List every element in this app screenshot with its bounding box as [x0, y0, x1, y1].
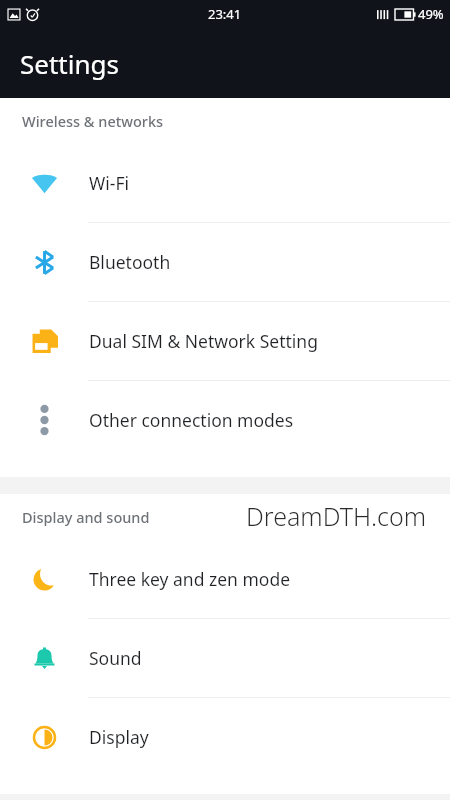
- staticText: Sound: [89, 646, 142, 670]
- staticText: 49%: [418, 5, 444, 23]
- button[interactable]: Wi-Fi: [0, 144, 450, 222]
- staticText: Wi-Fi: [89, 171, 130, 195]
- button[interactable]: Other connection modes: [0, 381, 450, 459]
- staticText: 23:41: [208, 5, 242, 23]
- button[interactable]: Sound: [0, 619, 450, 697]
- staticText: Other connection modes: [89, 408, 294, 432]
- button[interactable]: Dual SIM & Network Setting: [0, 302, 450, 380]
- button[interactable]: Display: [0, 698, 450, 776]
- staticText: Display and sound: [22, 507, 150, 527]
- staticText: DreamDTH.com: [246, 499, 427, 533]
- button[interactable]: Three key and zen mode: [0, 540, 450, 618]
- staticText: Bluetooth: [89, 250, 171, 274]
- staticText: Display: [89, 725, 149, 749]
- staticText: Settings: [20, 46, 119, 81]
- staticText: Wireless & networks: [22, 111, 164, 131]
- button[interactable]: Bluetooth: [0, 223, 450, 301]
- staticText: Dual SIM & Network Setting: [89, 329, 318, 353]
- staticText: Three key and zen mode: [89, 567, 291, 591]
